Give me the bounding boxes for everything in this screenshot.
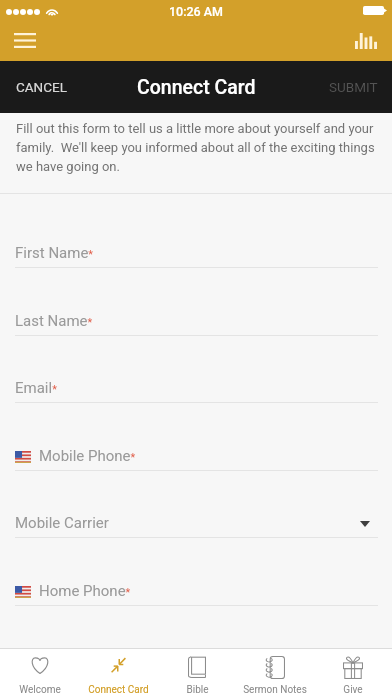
button[interactable]: SUBMIT <box>329 79 378 95</box>
button[interactable]: Give <box>314 649 392 696</box>
button[interactable]: Bible <box>158 649 236 696</box>
staticText: Give <box>343 684 363 696</box>
staticText: Connect Card <box>137 76 256 99</box>
staticText: Connect Card <box>88 684 149 696</box>
staticText: Mobile Phone* <box>39 447 136 465</box>
staticText: 10:26 AM <box>169 4 224 19</box>
staticText: Fill out this form to tell us a little m… <box>16 121 378 174</box>
button[interactable]: Mobile Phone* <box>0 403 392 471</box>
button[interactable]: Email* <box>0 336 392 403</box>
staticText: Email* <box>15 379 57 397</box>
staticText: CANCEL <box>16 79 67 95</box>
staticText: Last Name* <box>15 312 93 330</box>
button[interactable]: CANCEL <box>16 79 67 95</box>
staticText: Welcome <box>19 684 61 696</box>
button[interactable]: Menu <box>5 21 45 60</box>
staticText: Bible <box>186 684 209 696</box>
button[interactable]: Home Phone* <box>0 538 392 606</box>
staticText: Mobile Carrier <box>15 514 109 532</box>
staticText: Sermon Notes <box>243 684 307 696</box>
button[interactable]: Sermon Notes <box>236 649 314 696</box>
button[interactable]: Last Name* <box>0 268 392 336</box>
staticText: SUBMIT <box>329 79 378 95</box>
button[interactable]: Connect Card <box>79 649 158 696</box>
button[interactable]: Mobile Carrier <box>0 471 392 538</box>
staticText: First Name* <box>15 244 94 262</box>
button[interactable]: First Name* <box>0 200 392 268</box>
staticText: Home Phone* <box>39 582 131 600</box>
button[interactable]: Welcome <box>0 649 79 696</box>
button[interactable]: Equalizer <box>349 24 383 58</box>
